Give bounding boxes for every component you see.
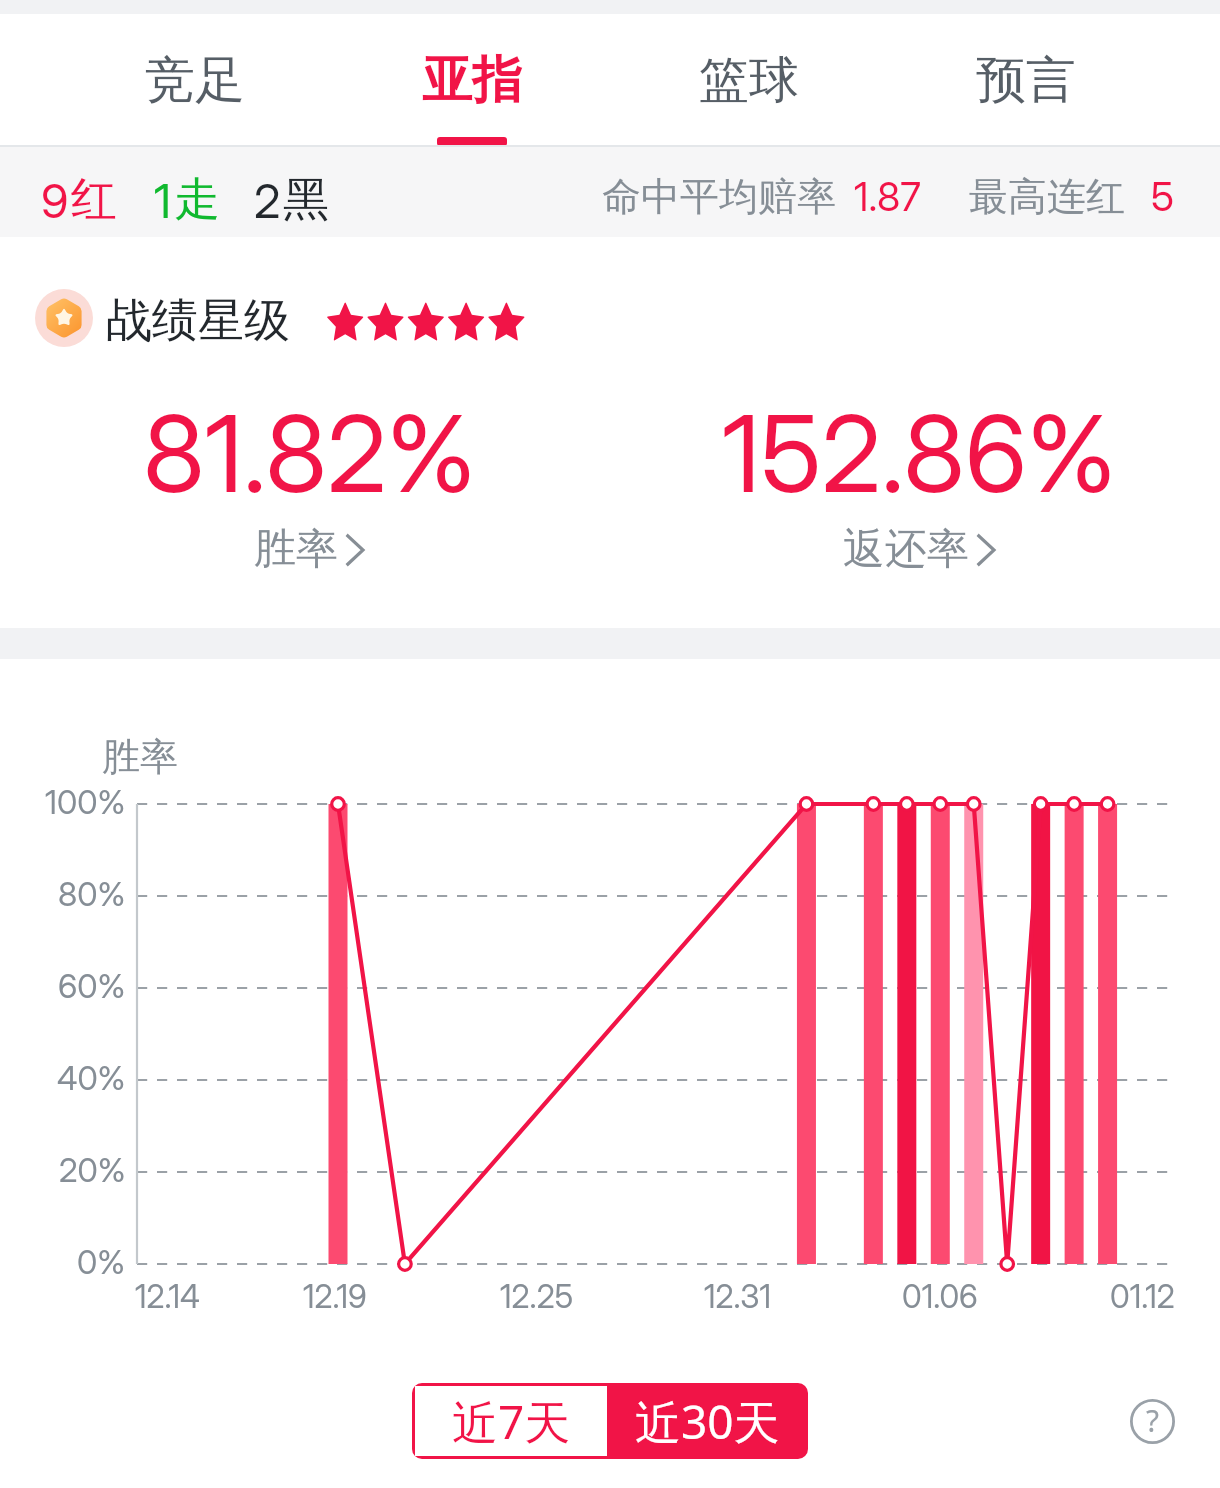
- staticText: 20%: [59, 1150, 126, 1190]
- staticText: 60%: [58, 966, 126, 1006]
- staticText: 命中平均赔率: [602, 172, 836, 221]
- staticText: 40%: [57, 1058, 126, 1098]
- staticText: 最高连红: [969, 172, 1125, 221]
- staticText: 01.12: [1110, 1277, 1175, 1316]
- staticText: 近30天: [635, 1390, 780, 1453]
- staticText: 2: [254, 172, 281, 229]
- staticText: 9: [41, 172, 69, 229]
- staticText: 红: [71, 171, 117, 229]
- button[interactable]: 152.86%: [614, 389, 1220, 576]
- button[interactable]: 竞足: [56, 14, 333, 145]
- staticText: 5: [1151, 172, 1175, 220]
- staticText: 亚指: [422, 49, 522, 112]
- staticText: 01.06: [902, 1277, 978, 1316]
- staticText: 12.25: [500, 1277, 574, 1316]
- staticText: 返还率: [843, 523, 969, 576]
- staticText: 胜率: [102, 733, 178, 781]
- button[interactable]: 篮球: [610, 14, 887, 145]
- staticText: 近7天: [452, 1390, 571, 1453]
- button[interactable]: 81.82%: [4, 389, 614, 576]
- button[interactable]: 近30天: [607, 1383, 808, 1459]
- staticText: 81.82%: [143, 389, 476, 517]
- staticText: 100%: [45, 782, 126, 822]
- staticText: 走: [174, 171, 220, 229]
- staticText: 0%: [77, 1242, 126, 1282]
- staticText: 战绩星级: [106, 292, 290, 350]
- staticText: 1: [154, 172, 172, 229]
- staticText: 12.14: [135, 1277, 200, 1316]
- button[interactable]: 亚指: [333, 14, 610, 145]
- staticText: 胜率: [254, 523, 338, 576]
- staticText: 80%: [58, 874, 126, 914]
- staticText: 预言: [976, 49, 1076, 112]
- staticText: 1.87: [854, 172, 921, 220]
- staticText: ?: [1146, 1400, 1160, 1441]
- button[interactable]: Help: [1130, 1399, 1175, 1444]
- staticText: 篮球: [699, 49, 799, 112]
- button[interactable]: 预言: [887, 14, 1164, 145]
- staticText: 12.19: [303, 1277, 367, 1316]
- staticText: 黑: [283, 171, 329, 229]
- staticText: 152.86%: [722, 389, 1117, 517]
- staticText: 12.31: [704, 1277, 772, 1316]
- button[interactable]: 近7天: [415, 1386, 607, 1456]
- staticText: 竞足: [145, 49, 245, 112]
